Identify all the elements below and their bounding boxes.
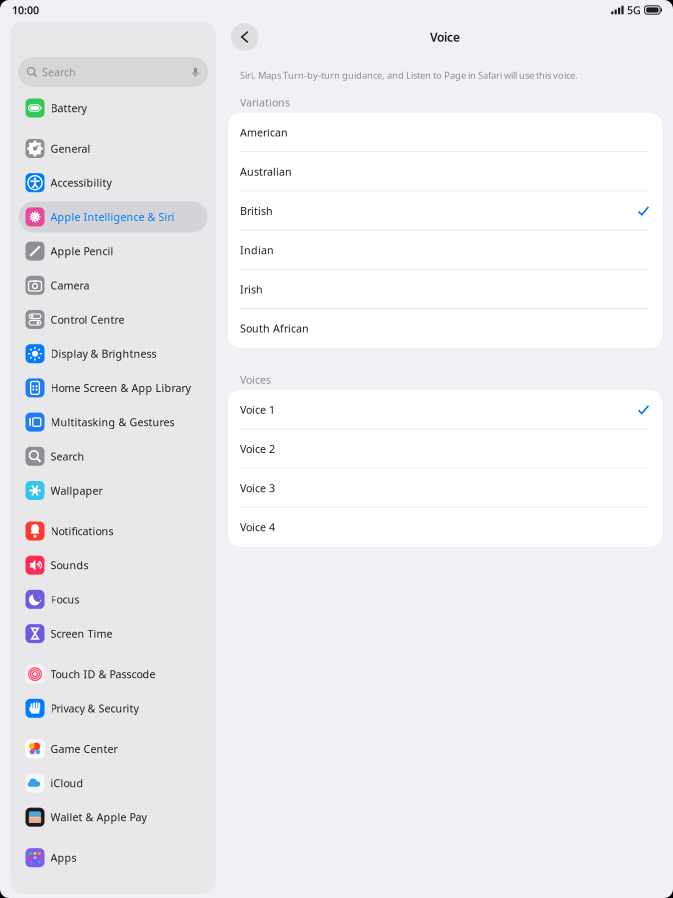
button[interactable]: Wallet & Apple Pay <box>18 802 207 833</box>
button[interactable]: Focus <box>18 584 207 615</box>
staticText: Apple Pencil <box>50 244 113 258</box>
staticText: Screen Time <box>50 626 112 641</box>
staticText: Search <box>50 449 84 463</box>
staticText: Control Centre <box>50 312 124 327</box>
staticText: Irish <box>240 282 263 296</box>
button[interactable]: Home Screen & App Library <box>18 372 207 403</box>
button[interactable]: Notifications <box>18 515 207 546</box>
staticText: Touch ID & Passcode <box>50 667 155 681</box>
button[interactable]: Apple Intelligence & Siri <box>18 201 207 232</box>
staticText: Game Center <box>50 742 117 756</box>
button[interactable]: Sounds <box>18 550 207 581</box>
button[interactable]: Privacy & Security <box>18 693 207 724</box>
button[interactable]: Display & Brightness <box>18 338 207 369</box>
button[interactable]: Battery <box>18 92 207 123</box>
staticText: Voice 2 <box>240 442 275 456</box>
staticText: Variations <box>240 95 290 110</box>
button[interactable]: Back <box>228 20 262 54</box>
button[interactable]: Voice 3 <box>228 468 662 508</box>
staticText: General <box>50 141 90 156</box>
staticText: 10:00 <box>12 3 39 17</box>
button[interactable]: British <box>228 191 662 230</box>
staticText: Wallpaper <box>50 483 102 498</box>
button[interactable]: Search <box>18 441 207 472</box>
button[interactable]: Game Center <box>18 733 207 764</box>
staticText: British <box>240 204 273 218</box>
staticText: Home Screen & App Library <box>50 381 190 395</box>
staticText: Voice <box>430 29 460 45</box>
staticText: Accessibility <box>50 176 111 190</box>
staticText: Camera <box>50 278 89 292</box>
staticText: 5G <box>627 3 641 17</box>
button[interactable]: iCloud <box>18 767 207 798</box>
button[interactable]: Apps <box>18 842 207 873</box>
button[interactable]: Multitasking & Gestures <box>18 407 207 438</box>
staticText: Notifications <box>50 524 113 538</box>
button[interactable]: General <box>18 133 207 164</box>
staticText: Voice 3 <box>240 481 275 495</box>
button[interactable]: Accessibility <box>18 167 207 198</box>
button[interactable]: Irish <box>228 270 662 309</box>
button[interactable]: Voice 1 <box>228 390 662 429</box>
staticText: Battery <box>50 101 86 115</box>
button[interactable]: Touch ID & Passcode <box>18 659 207 690</box>
staticText: Sounds <box>50 558 88 572</box>
staticText: Australian <box>240 165 292 179</box>
staticText: iCloud <box>50 776 83 790</box>
button[interactable]: Screen Time <box>18 618 207 649</box>
staticText: Apple Intelligence & Siri <box>50 210 174 224</box>
staticText: Voice 1 <box>240 402 275 417</box>
button[interactable]: South African <box>228 309 662 348</box>
button[interactable]: Wallpaper <box>18 475 207 506</box>
button[interactable]: Indian <box>228 230 662 270</box>
staticText: Wallet & Apple Pay <box>50 810 146 824</box>
staticText: Search <box>42 65 76 79</box>
staticText: Siri, Maps Turn-by-turn guidance, and Li… <box>240 69 578 81</box>
staticText: Privacy & Security <box>50 701 138 715</box>
staticText: Voices <box>240 373 271 387</box>
staticText: Indian <box>240 243 274 257</box>
button[interactable]: Control Centre <box>18 304 207 335</box>
staticText: Apps <box>50 851 76 865</box>
staticText: American <box>240 125 288 140</box>
staticText: Focus <box>50 592 79 606</box>
button[interactable]: American <box>228 113 662 152</box>
button[interactable]: Camera <box>18 270 207 301</box>
staticText: Multitasking & Gestures <box>50 415 174 429</box>
button[interactable]: Australian <box>228 152 662 191</box>
button[interactable]: Voice 4 <box>228 508 662 547</box>
staticText: Voice 4 <box>240 520 275 534</box>
button[interactable]: Voice 2 <box>228 429 662 468</box>
staticText: Display & Brightness <box>50 347 156 361</box>
button[interactable]: Apple Pencil <box>18 236 207 267</box>
staticText: South African <box>240 321 309 336</box>
